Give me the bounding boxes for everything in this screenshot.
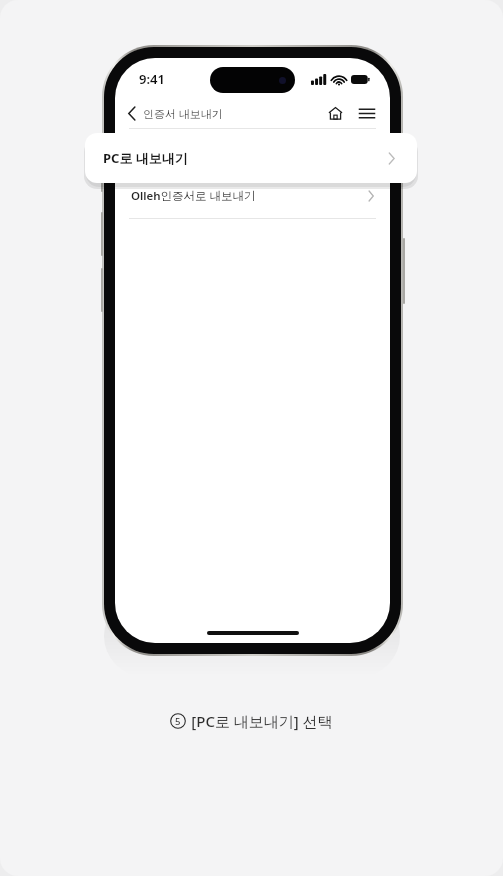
button[interactable]: PC로 내보내기 <box>85 133 417 183</box>
button[interactable]: 스마트폰으로 내보내기 <box>115 129 390 173</box>
staticText: 9:41 <box>139 70 165 88</box>
staticText: 스마트폰으로 내보내기 <box>131 143 249 159</box>
button[interactable]: Back <box>115 102 229 125</box>
button[interactable]: Menu <box>354 102 380 125</box>
staticText: PC로 내보내기 <box>103 149 188 167</box>
staticText: Olleh인증서로 내보내기 <box>131 188 256 204</box>
staticText: 인증서 내보내기 <box>143 106 223 121</box>
staticText: 5 <box>175 715 181 728</box>
button[interactable]: Olleh인증서로 내보내기 <box>115 174 390 218</box>
staticText: [PC로 내보내기] 선택 <box>191 711 333 731</box>
button[interactable]: Home <box>323 101 348 126</box>
